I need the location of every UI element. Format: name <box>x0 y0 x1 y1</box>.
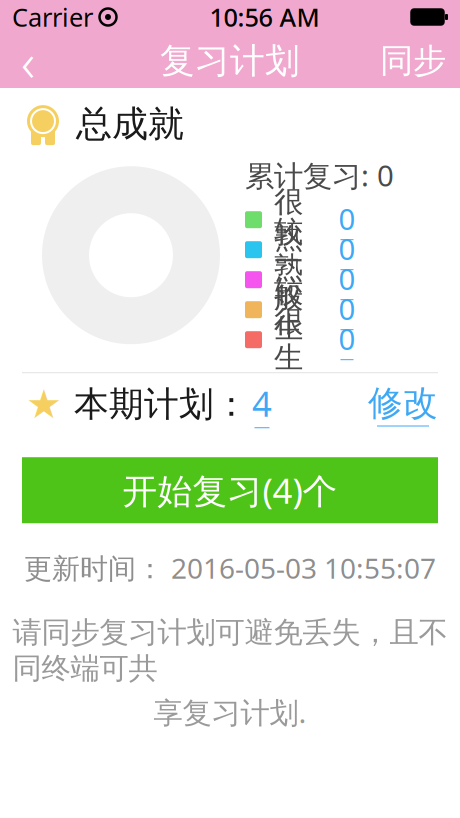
staticText: 很熟 <box>274 184 303 256</box>
staticText: 更新时间： 2016-05-03 10:55:07 <box>24 549 436 586</box>
staticText: 0 <box>338 229 355 268</box>
staticText <box>93 5 98 29</box>
button[interactable]: 修改 <box>368 382 460 426</box>
staticText: 0 <box>338 289 355 328</box>
staticText: 0 <box>338 199 355 238</box>
button[interactable]: 4 <box>249 384 275 424</box>
staticText: ★ <box>26 381 62 427</box>
button[interactable]: 开始复习(4)个 <box>22 457 438 523</box>
staticText: 复习计划 <box>160 40 300 82</box>
staticText: 开始复习(4)个 <box>122 467 337 513</box>
staticText: 一般 <box>274 244 303 316</box>
staticText: 10:56 AM <box>209 0 319 34</box>
button[interactable]: 同步 <box>366 34 460 88</box>
button[interactable]: 0 <box>336 264 358 296</box>
staticText: 享复习计划. <box>153 692 306 731</box>
staticText: 很生 <box>274 304 303 376</box>
button[interactable]: 0 <box>336 324 358 356</box>
staticText: ‹ <box>21 26 35 96</box>
staticText: Carrier <box>12 0 93 34</box>
staticText: 0 <box>338 319 355 358</box>
button[interactable]: 0 <box>336 234 358 266</box>
staticText: 总成就 <box>76 102 184 146</box>
staticText: 请同步复习计划可避免丢失，且不同终端可共 <box>12 614 447 686</box>
staticText: 较生 <box>274 274 303 346</box>
staticText: 同步 <box>380 40 446 81</box>
staticText: 较熟 <box>274 214 303 286</box>
staticText: 0 <box>338 259 355 298</box>
button[interactable]: 0 <box>336 294 358 326</box>
staticText: 累计复习: 0 <box>245 156 394 195</box>
button[interactable]: Back <box>0 34 56 88</box>
staticText: 4 <box>252 380 272 426</box>
staticText: 修改 <box>368 382 438 424</box>
button[interactable]: 0 <box>336 204 358 236</box>
staticText: 本期计划： <box>74 383 249 425</box>
